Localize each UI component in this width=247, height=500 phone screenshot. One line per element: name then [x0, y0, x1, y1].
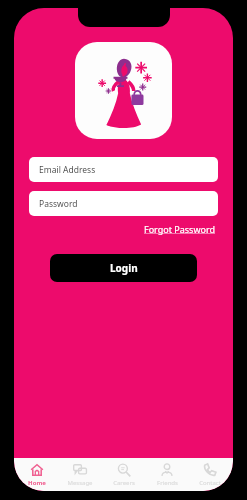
button[interactable]: Forgot Password: [142, 221, 218, 237]
staticText: Forgot Password: [144, 223, 216, 235]
button[interactable]: Contact: [190, 462, 230, 488]
button[interactable]: Password: [29, 191, 218, 216]
staticText: Password: [39, 198, 78, 210]
button[interactable]: Login: [50, 254, 197, 282]
button[interactable]: Message: [60, 462, 100, 488]
button[interactable]: Careers: [104, 462, 144, 488]
staticText: Email Address: [39, 164, 96, 176]
staticText: Contact: [199, 479, 221, 487]
button[interactable]: Home: [17, 462, 57, 488]
staticText: Friends: [157, 479, 178, 487]
button[interactable]: Friends: [147, 462, 187, 488]
staticText: Message: [67, 479, 93, 487]
staticText: Login: [110, 261, 138, 275]
button[interactable]: Email Address: [29, 157, 218, 182]
staticText: Home: [28, 479, 46, 487]
staticText: Careers: [113, 479, 135, 487]
